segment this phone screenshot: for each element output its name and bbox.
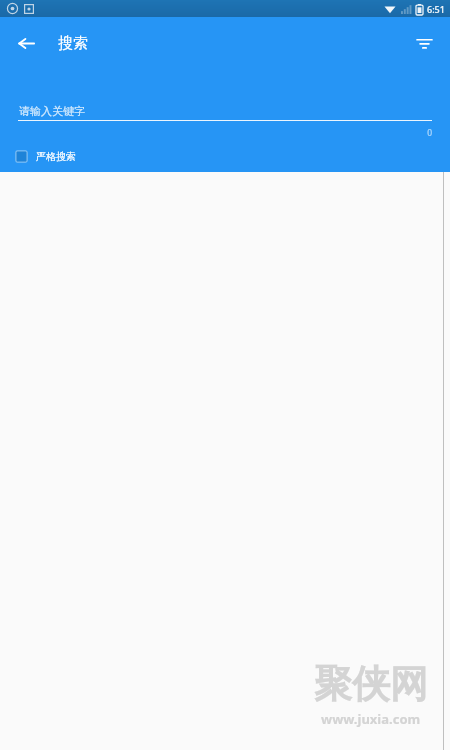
staticText: www.juxia.com [321, 710, 421, 728]
staticText: 0 [427, 127, 432, 139]
button[interactable]: Filter [404, 23, 444, 63]
staticText: 6:51 [427, 3, 445, 15]
button[interactable]: Back [6, 23, 46, 63]
staticText: 搜索 [58, 34, 88, 53]
staticText: 严格搜索 [36, 150, 76, 163]
staticText: 请输入关键字 [19, 104, 85, 118]
button[interactable]: 严格搜索 [15, 141, 450, 172]
staticText: 聚侠网 [314, 660, 428, 708]
